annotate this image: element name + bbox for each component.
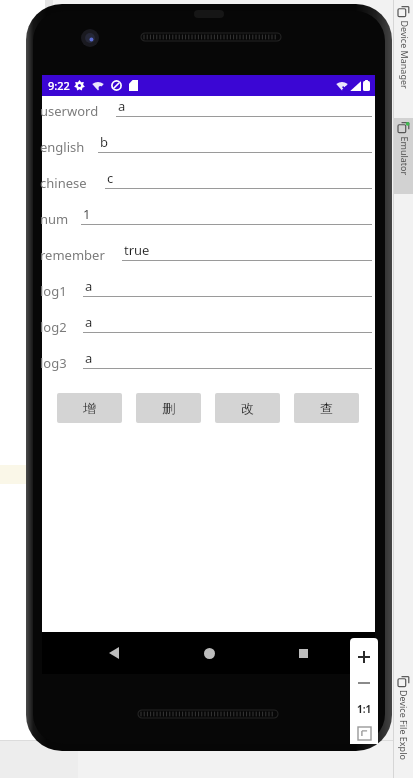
button[interactable]: 改 — [215, 393, 280, 423]
staticText: a — [85, 349, 93, 367]
staticText: 1 — [83, 205, 91, 223]
button[interactable]: Zoom to actual size — [351, 696, 377, 722]
staticText: 1:1 — [357, 702, 372, 716]
button[interactable]: log2 — [42, 312, 375, 348]
button[interactable]: log1 — [42, 276, 375, 312]
button[interactable]: Zoom to fit — [351, 722, 377, 744]
staticText: a — [85, 277, 93, 295]
button[interactable]: userword — [42, 96, 375, 132]
staticText: Device Manager — [398, 20, 410, 89]
button[interactable]: 删 — [136, 393, 201, 423]
button[interactable]: Device Manager — [394, 2, 413, 114]
button[interactable]: Device File Explo — [394, 672, 413, 778]
button[interactable]: num — [42, 204, 375, 240]
button[interactable]: Back — [98, 637, 130, 669]
staticText: 查 — [320, 400, 333, 416]
staticText: Device File Explo — [398, 690, 410, 760]
staticText: Emulator — [398, 136, 410, 175]
button[interactable]: Zoom out — [351, 670, 377, 696]
button[interactable]: chinese — [42, 168, 375, 204]
button[interactable]: english — [42, 132, 375, 168]
staticText: log1 — [40, 282, 67, 300]
button[interactable]: Zoom in — [351, 644, 377, 670]
staticText: a — [118, 97, 126, 115]
staticText: c — [107, 169, 114, 187]
staticText: english — [40, 138, 85, 156]
staticText: 改 — [241, 400, 254, 416]
button[interactable]: Recent apps — [287, 637, 319, 669]
staticText: true — [124, 241, 150, 259]
button[interactable]: Emulator — [394, 118, 413, 194]
button[interactable]: log3 — [42, 348, 375, 384]
staticText: log3 — [40, 354, 67, 372]
staticText: remember — [40, 246, 105, 264]
staticText: 增 — [83, 400, 96, 416]
staticText: num — [40, 210, 69, 228]
button[interactable]: 增 — [57, 393, 122, 423]
button[interactable]: 查 — [294, 393, 359, 423]
button[interactable]: remember — [42, 240, 375, 276]
staticText: 9:22 — [48, 78, 70, 93]
button[interactable]: Home — [193, 637, 225, 669]
staticText: userword — [40, 102, 99, 120]
staticText: b — [100, 133, 108, 151]
staticText: chinese — [40, 174, 87, 192]
staticText: log2 — [40, 318, 67, 336]
staticText: a — [85, 313, 93, 331]
staticText: 删 — [162, 400, 175, 416]
